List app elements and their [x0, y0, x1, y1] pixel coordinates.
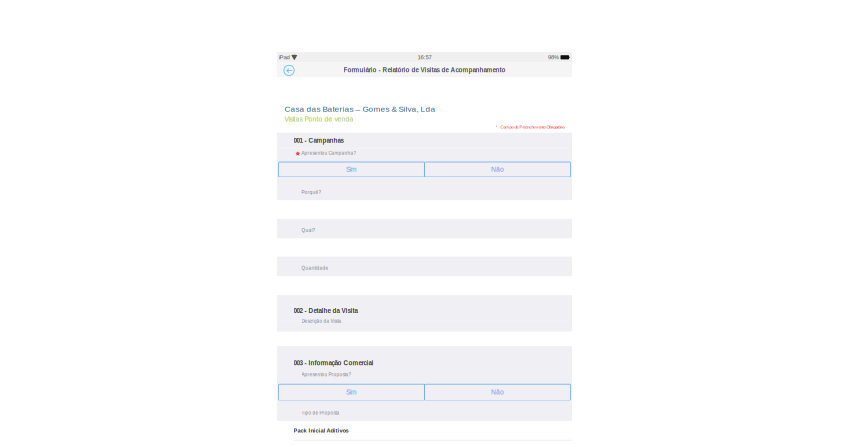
staticText: Quantidade [302, 266, 329, 271]
staticText: 98% [548, 54, 559, 60]
staticText: Formulário - Relatório de Visitas de Aco… [343, 66, 505, 73]
staticText: Não [491, 166, 504, 173]
button[interactable]: Pack Inicial Aditivos [277, 421, 572, 440]
staticText: * - Campo de Preenchimento Obrigatório [496, 125, 565, 129]
button[interactable]: Sim [279, 162, 424, 177]
staticText: Casa das Baterias – Gomes & Silva, Lda [284, 104, 435, 113]
staticText: Apresentou Campanha? [301, 151, 356, 156]
staticText: Não [491, 389, 504, 396]
staticText: iPad [278, 54, 289, 61]
staticText: 16:57 [417, 54, 431, 61]
button[interactable]: Sim [279, 384, 424, 400]
staticText: Pack Inicial Aditivos [293, 427, 348, 434]
button[interactable]: Back [282, 63, 296, 77]
staticText: Qual? [302, 228, 316, 233]
staticText: Tipo de Proposta [302, 410, 340, 415]
staticText: Descrição da Visita [302, 319, 342, 324]
staticText: Sim [346, 389, 357, 396]
button[interactable]: Não [424, 384, 570, 400]
staticText: Sim [346, 166, 357, 173]
staticText: Visitas Ponto de venda [284, 115, 353, 123]
staticText: 002 - Detalhe da Visita [293, 307, 357, 314]
staticText: 003 - Informação Comercial [293, 360, 373, 367]
staticText: Apresentou Proposta? [302, 372, 352, 377]
staticText: 001 - Campanhas [293, 137, 343, 144]
button[interactable]: Não [424, 162, 570, 177]
staticText: Porquê? [302, 190, 322, 195]
